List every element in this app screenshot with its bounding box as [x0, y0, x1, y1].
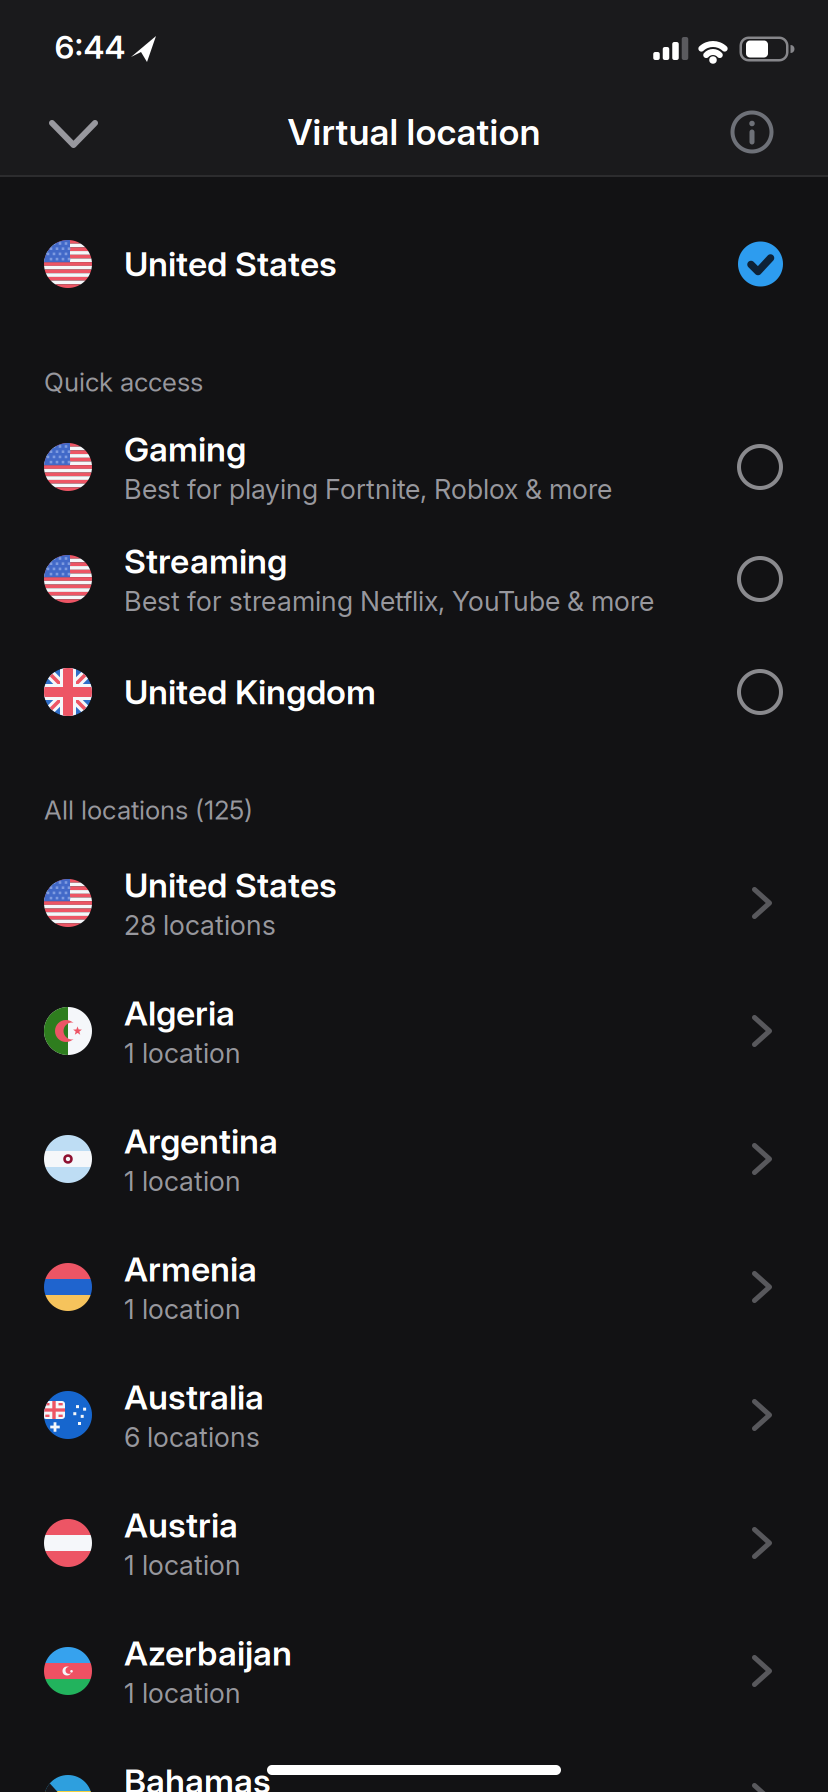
button[interactable]: Info [730, 110, 773, 153]
button[interactable]: United States [0, 839, 828, 967]
button[interactable]: Armenia [0, 1223, 828, 1351]
button[interactable]: Close [49, 120, 98, 148]
staticText: 6 locations [124, 1421, 260, 1453]
staticText: Australia [124, 1377, 264, 1418]
button[interactable]: Streaming [0, 523, 828, 635]
staticText: United States [124, 865, 337, 906]
staticText: 1 location [124, 1549, 241, 1581]
staticText: 1 location [124, 1677, 241, 1709]
staticText: Quick access [44, 366, 203, 398]
staticText: Streaming [124, 541, 287, 582]
staticText: United Kingdom [124, 671, 376, 712]
staticText: Argentina [124, 1121, 278, 1162]
staticText: Algeria [124, 993, 235, 1034]
button[interactable]: Austria [0, 1479, 828, 1607]
button[interactable]: Algeria [0, 967, 828, 1095]
staticText: 1 location [124, 1037, 241, 1069]
button[interactable]: United Kingdom [0, 636, 828, 748]
staticText: 1 location [124, 1293, 241, 1325]
staticText: Gaming [124, 429, 246, 470]
staticText: Virtual location [287, 110, 540, 154]
staticText: Austria [124, 1505, 238, 1546]
staticText: All locations (125) [44, 794, 253, 826]
staticText: Best for playing Fortnite, Roblox & more [124, 473, 612, 505]
staticText: Best for streaming Netflix, YouTube & mo… [124, 585, 654, 617]
button[interactable]: United States [0, 208, 828, 320]
staticText: Armenia [124, 1249, 257, 1290]
staticText: Bahamas [124, 1761, 271, 1792]
staticText: Azerbaijan [124, 1633, 292, 1674]
staticText: United States [124, 243, 337, 284]
staticText: 6:44 [54, 28, 125, 66]
button[interactable]: Gaming [0, 411, 828, 523]
button[interactable]: Azerbaijan [0, 1607, 828, 1735]
button[interactable]: Bahamas [0, 1735, 828, 1792]
staticText: 28 locations [124, 909, 276, 941]
button[interactable]: Argentina [0, 1095, 828, 1223]
button[interactable]: Australia [0, 1351, 828, 1479]
staticText: 1 location [124, 1165, 241, 1197]
